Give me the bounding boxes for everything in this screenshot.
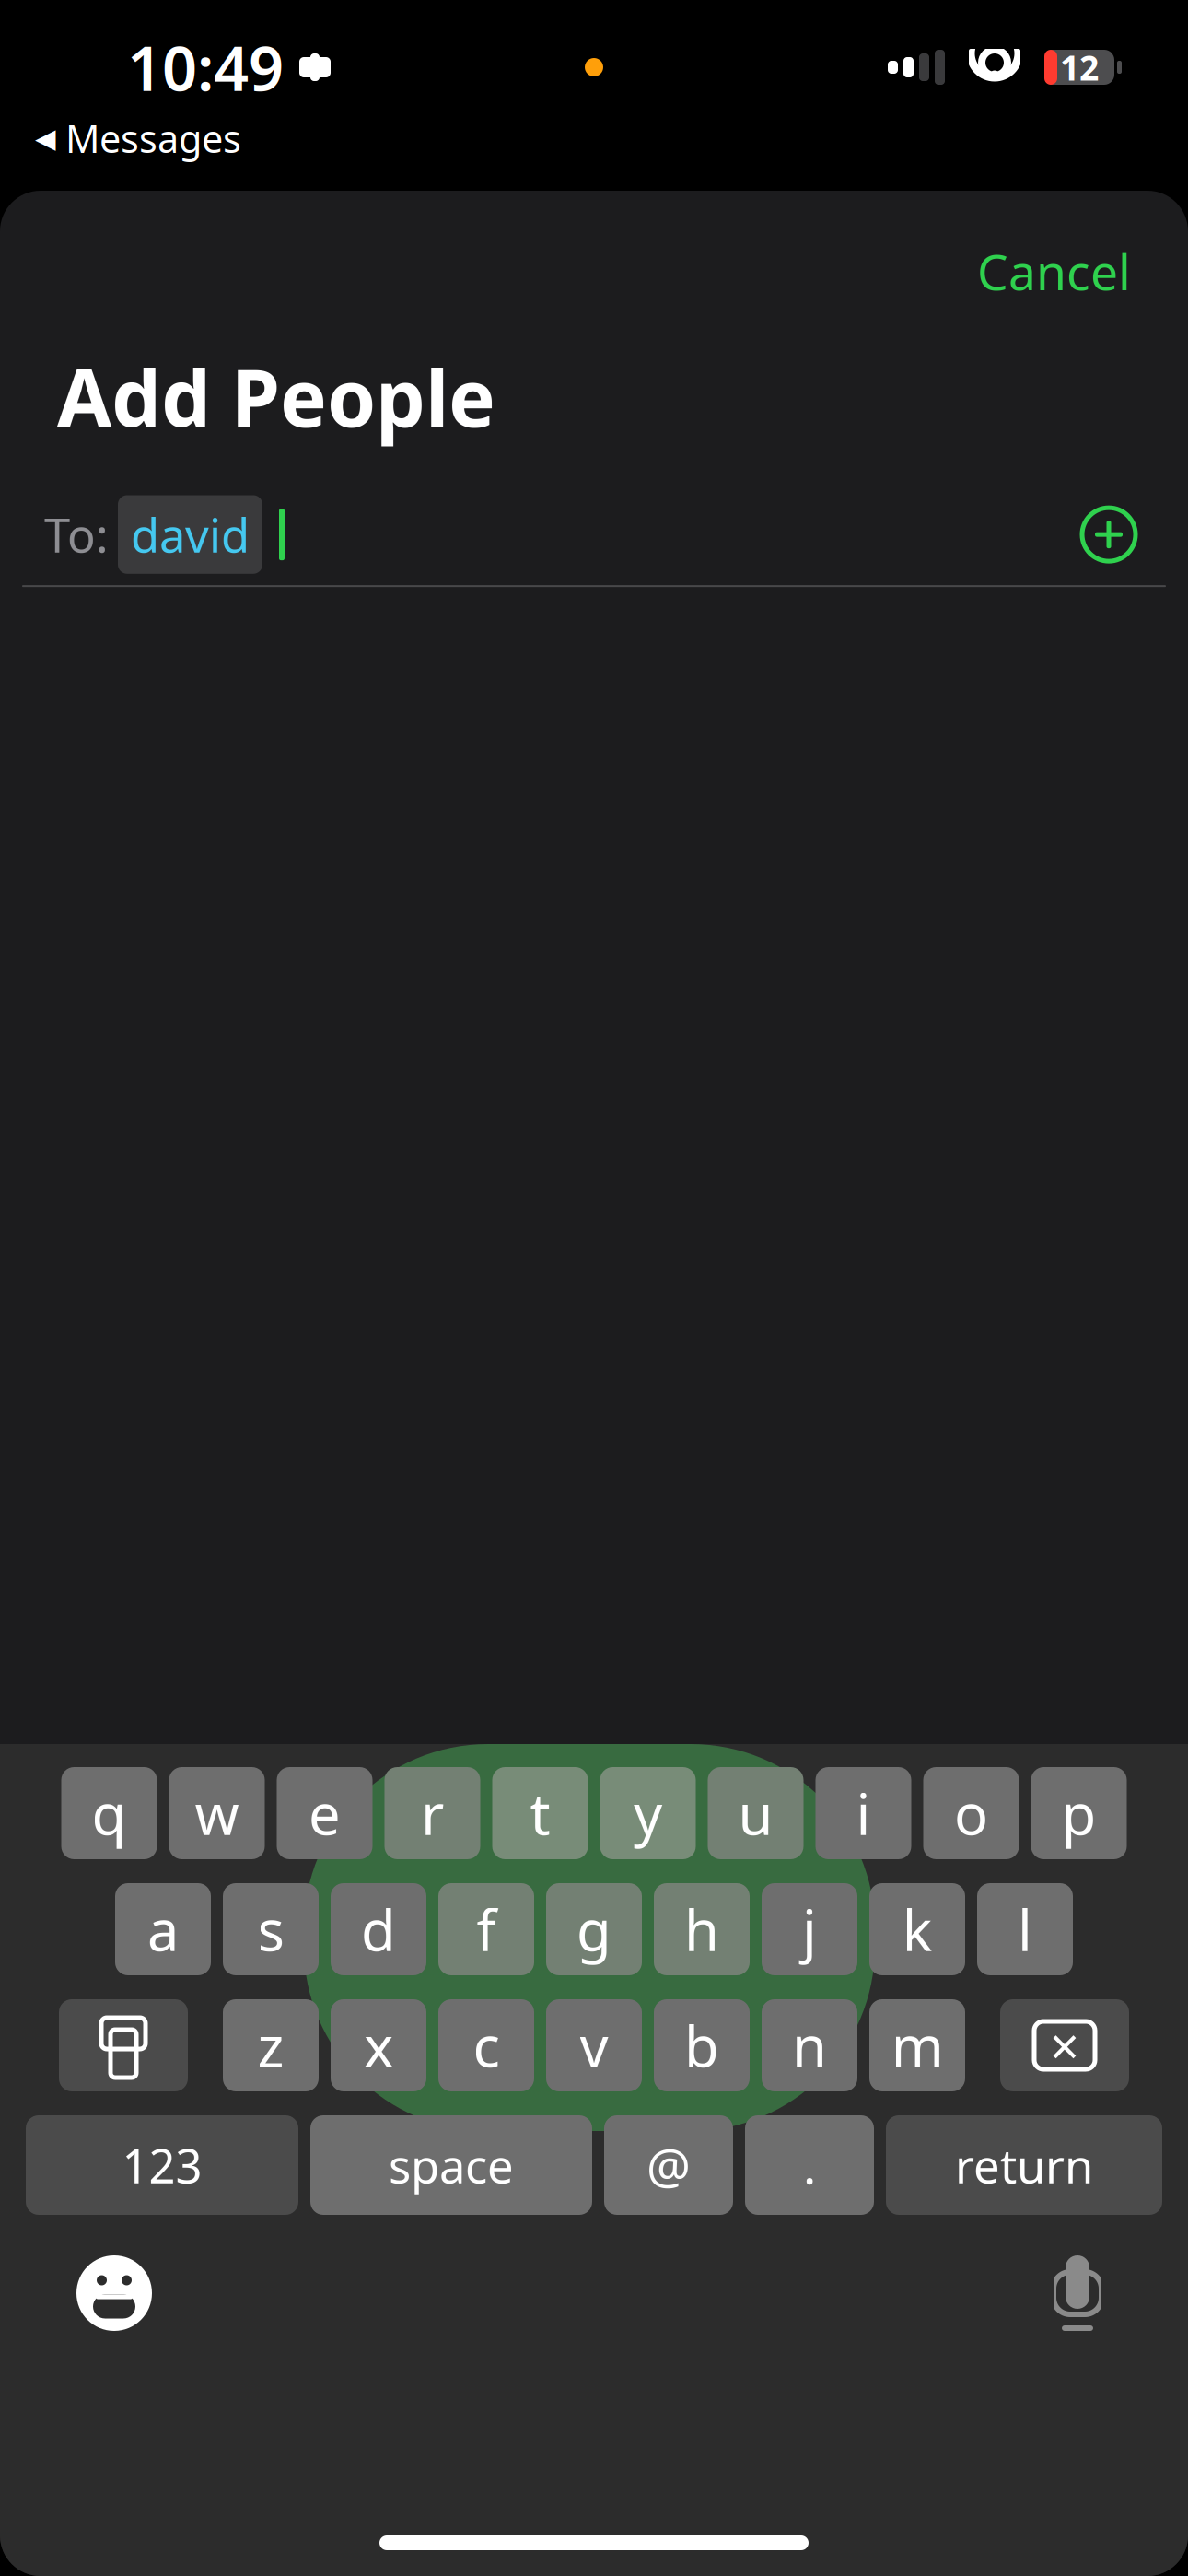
button[interactable]: o bbox=[923, 1767, 1019, 1859]
staticText: o bbox=[954, 1776, 988, 1851]
staticText: space bbox=[389, 2134, 514, 2196]
button[interactable]: ◀ bbox=[35, 109, 241, 167]
staticText: 123 bbox=[122, 2134, 202, 2196]
staticText: s bbox=[257, 1892, 284, 1967]
staticText: p bbox=[1061, 1776, 1096, 1851]
staticText: j bbox=[802, 1892, 817, 1967]
staticText: v bbox=[580, 2008, 608, 2083]
staticText: b bbox=[684, 2008, 719, 2083]
button[interactable]: . bbox=[745, 2115, 874, 2215]
button[interactable]: y bbox=[600, 1767, 696, 1859]
staticText: c bbox=[473, 2008, 500, 2083]
staticText: r bbox=[421, 1776, 444, 1851]
staticText: . bbox=[803, 2132, 816, 2198]
staticText: w bbox=[195, 1776, 239, 1851]
button[interactable]: s bbox=[223, 1883, 319, 1975]
button[interactable]: u bbox=[708, 1767, 804, 1859]
staticText: u bbox=[738, 1776, 773, 1851]
button[interactable]: Shift bbox=[59, 1999, 188, 2091]
button[interactable]: l bbox=[977, 1883, 1073, 1975]
staticText: return bbox=[955, 2134, 1093, 2196]
button[interactable]: Emoji keyboard bbox=[72, 2251, 157, 2336]
staticText: t bbox=[530, 1776, 550, 1851]
staticText: l bbox=[1018, 1892, 1032, 1967]
button[interactable]: g bbox=[546, 1883, 642, 1975]
button[interactable]: j bbox=[762, 1883, 857, 1975]
button[interactable]: k bbox=[869, 1883, 965, 1975]
button[interactable]: Cancel bbox=[964, 229, 1144, 313]
button[interactable]: space bbox=[310, 2115, 592, 2215]
button[interactable]: t bbox=[492, 1767, 588, 1859]
staticText: e bbox=[309, 1776, 341, 1851]
staticText: david bbox=[131, 503, 250, 566]
staticText: Messages bbox=[65, 113, 241, 164]
staticText: q bbox=[92, 1776, 127, 1851]
staticText: To: bbox=[44, 503, 109, 566]
button[interactable]: r bbox=[384, 1767, 480, 1859]
button[interactable]: h bbox=[654, 1883, 750, 1975]
staticText: Cancel bbox=[977, 239, 1131, 304]
button[interactable]: p bbox=[1031, 1767, 1127, 1859]
button[interactable]: v bbox=[546, 1999, 642, 2091]
button[interactable]: d bbox=[331, 1883, 426, 1975]
staticText: g bbox=[577, 1892, 611, 1967]
staticText: n bbox=[792, 2008, 827, 2083]
staticText: ◀ bbox=[35, 123, 56, 154]
staticText: y bbox=[634, 1776, 662, 1851]
button[interactable]: i bbox=[815, 1767, 911, 1859]
button[interactable]: f bbox=[438, 1883, 534, 1975]
staticText: i bbox=[856, 1776, 871, 1851]
button[interactable]: x bbox=[331, 1999, 426, 2091]
button[interactable]: Dictate bbox=[1048, 2255, 1107, 2331]
button[interactable]: a bbox=[115, 1883, 211, 1975]
staticText: Add People bbox=[57, 344, 495, 449]
button[interactable]: Add contact bbox=[1070, 496, 1147, 573]
button[interactable]: david bbox=[118, 495, 262, 574]
button[interactable]: e bbox=[277, 1767, 373, 1859]
staticText: 12 bbox=[1060, 44, 1099, 90]
button[interactable]: q bbox=[61, 1767, 157, 1859]
button[interactable]: n bbox=[762, 1999, 857, 2091]
button[interactable]: w bbox=[169, 1767, 265, 1859]
staticText: x bbox=[364, 2008, 393, 2083]
staticText: z bbox=[257, 2008, 284, 2083]
button[interactable]: 123 bbox=[26, 2115, 298, 2215]
button[interactable]: b bbox=[654, 1999, 750, 2091]
staticText: k bbox=[902, 1892, 932, 1967]
staticText: 10:49 bbox=[127, 26, 284, 108]
staticText: × bbox=[1050, 2011, 1079, 2080]
staticText: m bbox=[891, 2008, 943, 2083]
staticText: @ bbox=[646, 2132, 691, 2198]
staticText: f bbox=[477, 1892, 496, 1967]
button[interactable]: @ bbox=[604, 2115, 733, 2215]
staticText: h bbox=[684, 1892, 719, 1967]
button[interactable]: m bbox=[869, 1999, 965, 2091]
button[interactable]: Delete bbox=[1000, 1999, 1129, 2091]
button[interactable]: return bbox=[886, 2115, 1162, 2215]
button[interactable]: z bbox=[223, 1999, 319, 2091]
button[interactable]: c bbox=[438, 1999, 534, 2091]
staticText: a bbox=[147, 1892, 179, 1967]
staticText: d bbox=[361, 1892, 396, 1967]
